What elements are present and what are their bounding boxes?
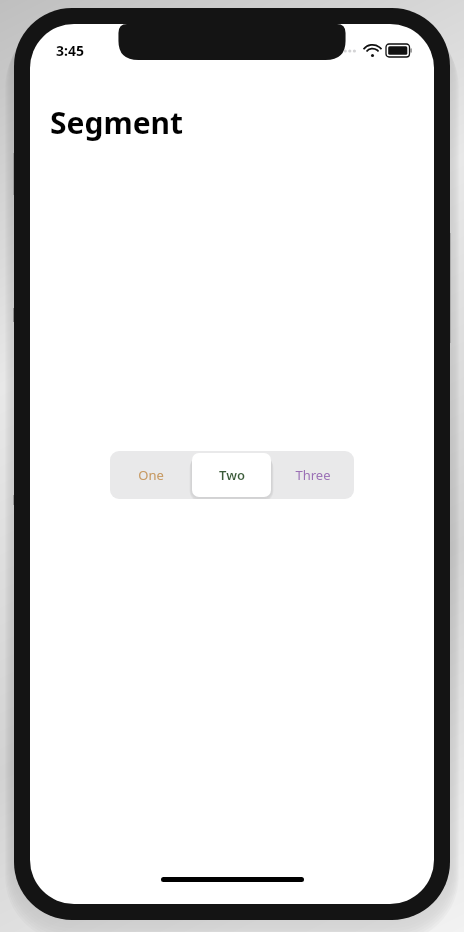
staticText: Two (219, 466, 245, 484)
button[interactable]: Two (191, 451, 272, 499)
staticText: Segment (50, 102, 184, 143)
staticText: One (138, 466, 164, 484)
button[interactable]: One (110, 451, 191, 499)
staticText: Three (295, 466, 331, 484)
staticText: 3:45 (56, 41, 84, 60)
button[interactable]: Three (272, 451, 353, 499)
